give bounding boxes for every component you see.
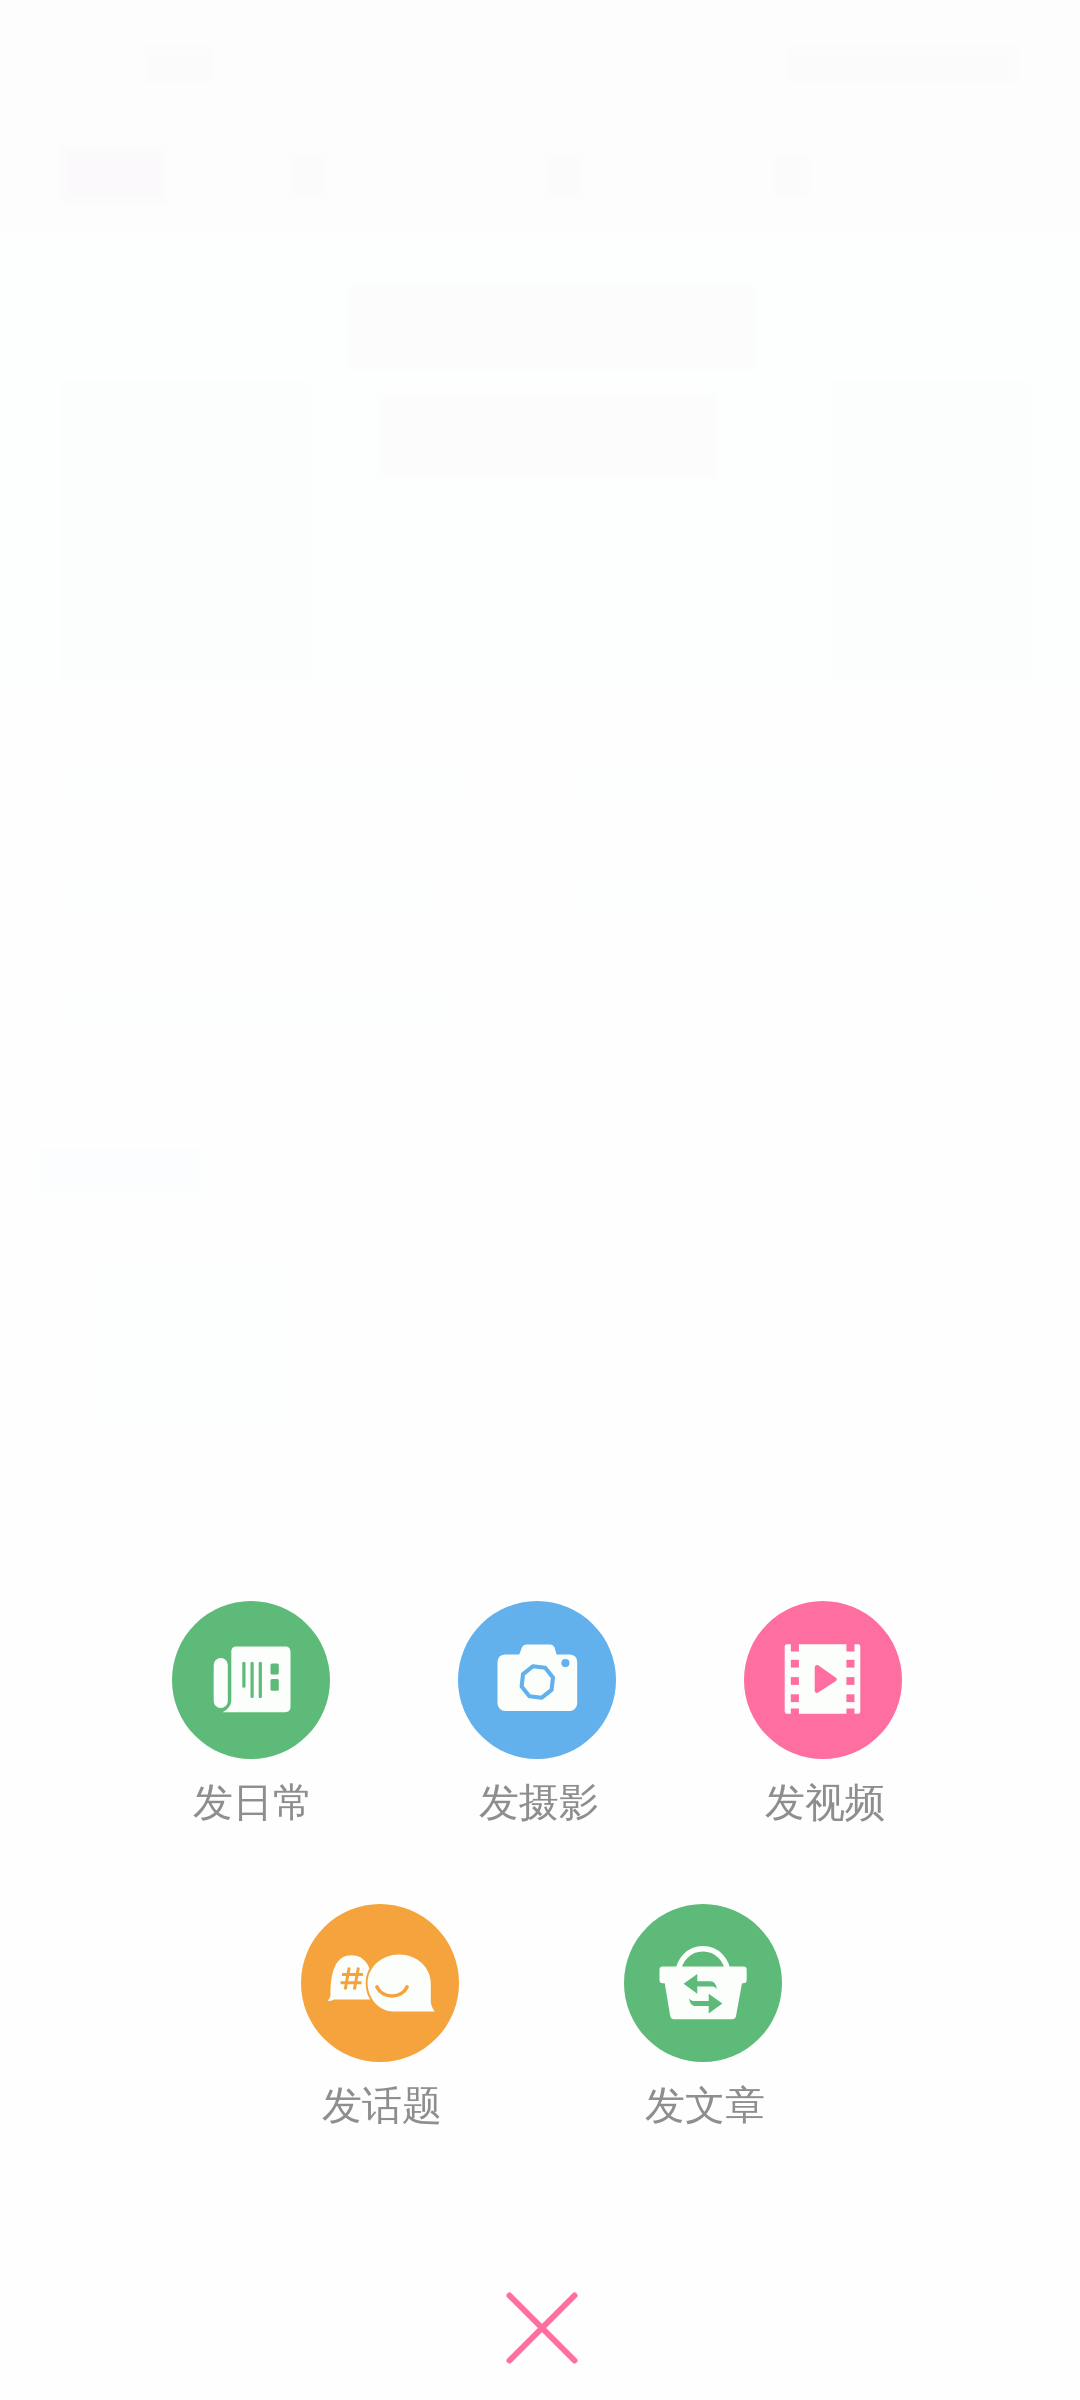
button[interactable]: Post topic: [301, 1904, 459, 2130]
staticText: 发日常: [174, 1777, 332, 1827]
button[interactable]: Post video: [744, 1601, 902, 1827]
button[interactable]: Post daily: [172, 1601, 330, 1827]
staticText: 发视频: [746, 1777, 904, 1827]
button[interactable]: Post article: [624, 1904, 782, 2130]
staticText: 发文章: [626, 2080, 784, 2130]
button[interactable]: Post photo: [458, 1601, 616, 1827]
staticText: 发摄影: [460, 1777, 618, 1827]
staticText: 发话题: [303, 2080, 461, 2130]
button[interactable]: Close: [477, 2263, 607, 2393]
